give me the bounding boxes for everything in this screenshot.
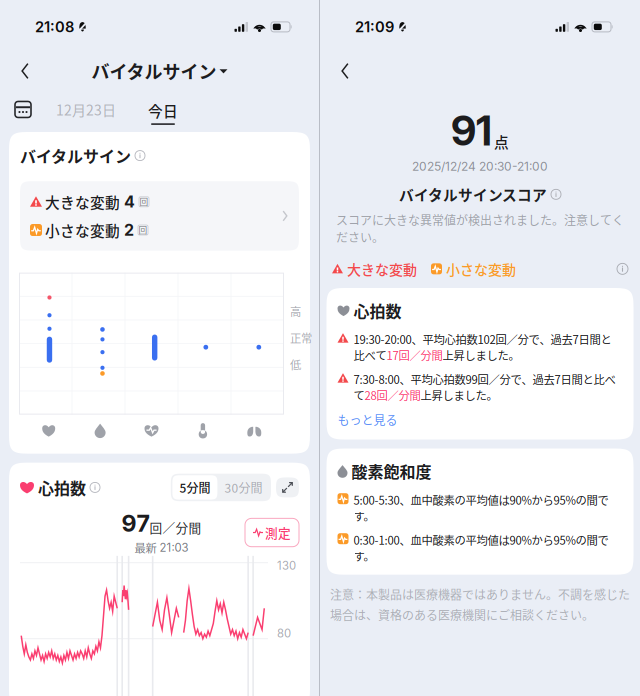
staticText: 130	[277, 559, 296, 573]
staticText: 小さな変動	[446, 259, 516, 279]
staticText: 正常	[290, 329, 312, 346]
button[interactable]: 大きな変動	[20, 181, 299, 251]
button[interactable]: Back	[8, 54, 42, 88]
staticText: 場合は、資格のある医療機関にご相談ください。	[330, 606, 594, 623]
staticText: 0:30-1:00、血中酸素の平均値は90%から95%の間です。	[353, 532, 608, 564]
staticText: 2	[124, 220, 134, 240]
button[interactable]: Expand chart	[276, 477, 299, 497]
staticText: 高	[290, 303, 301, 319]
staticText: 21:08	[35, 18, 74, 36]
staticText: もっと見る	[337, 411, 397, 429]
staticText: バイタルサイン	[20, 144, 131, 167]
staticText: 4	[124, 192, 135, 211]
staticText: スコアに大きな異常値が検出されました。注意してください。	[336, 211, 624, 246]
staticText: 21:09	[355, 18, 394, 36]
button[interactable]: 5分間	[172, 475, 217, 500]
staticText: 回／分間	[149, 518, 201, 536]
button[interactable]: 今日	[138, 94, 188, 125]
staticText: 酸素飽和度	[351, 459, 431, 483]
button[interactable]: Back	[328, 54, 362, 88]
staticText: 19:30-20:00、平均心拍数102回／分で、過去7日間と比べて17回／分間…	[353, 331, 611, 363]
staticText: 97	[121, 509, 149, 537]
staticText: 測定	[265, 523, 291, 542]
staticText: 2025/12/24 20:30-21:00	[412, 159, 548, 174]
button[interactable]: 測定	[245, 518, 299, 547]
staticText: 今日	[148, 100, 178, 121]
staticText: 小さな変動	[45, 219, 120, 241]
staticText: 12月23日	[56, 99, 116, 120]
staticText: 回	[139, 195, 148, 208]
staticText: 心拍数	[38, 476, 86, 499]
staticText: 5分間	[179, 479, 210, 496]
staticText: 91	[451, 106, 492, 155]
staticText: 注意：本製品は医療機器ではありません。不調を感じた	[330, 586, 630, 603]
button[interactable]: もっと見る	[337, 411, 397, 429]
button[interactable]: Calendar	[12, 98, 34, 120]
staticText: バイタルサインスコア	[399, 184, 547, 205]
staticText: 回	[138, 224, 147, 236]
button[interactable]: 30分間	[217, 475, 269, 500]
button[interactable]: Information	[617, 263, 628, 274]
staticText: 心拍数	[353, 299, 401, 322]
staticText: 5:00-5:30、血中酸素の平均値は90%から95%の間です。	[353, 492, 608, 524]
staticText: 低	[290, 356, 301, 372]
staticText: バイタルサイン	[91, 58, 216, 84]
staticText: 7:30-8:00、平均心拍数99回／分で、過去7日間と比べて28回／分間上昇し…	[353, 371, 615, 403]
staticText: 30分間	[224, 479, 262, 496]
staticText: 21:03	[159, 541, 188, 554]
staticText: 点	[494, 131, 509, 152]
button[interactable]: 12月23日	[34, 94, 138, 125]
staticText: 80	[277, 626, 291, 640]
staticText: 大きな変動	[347, 259, 417, 279]
staticText: 最新	[134, 539, 156, 556]
staticText: 大きな変動	[45, 191, 120, 212]
